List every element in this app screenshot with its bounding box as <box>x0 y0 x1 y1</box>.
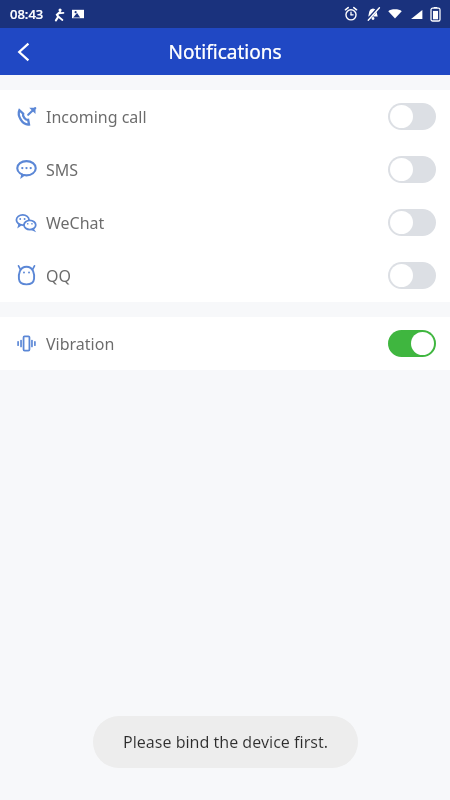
button[interactable]: Please bind the device first. <box>93 716 358 768</box>
staticText: Incoming call <box>46 106 147 128</box>
staticText: SMS <box>46 159 79 181</box>
staticText: WeChat <box>46 212 105 234</box>
staticText: Vibration <box>46 333 115 355</box>
button[interactable]: SMS <box>0 143 450 196</box>
staticText: Please bind the device first. <box>123 731 328 753</box>
staticText: QQ <box>46 265 71 287</box>
button[interactable]: QQ <box>0 249 450 302</box>
button[interactable]: Off <box>388 209 436 236</box>
button[interactable]: Off <box>388 103 436 130</box>
button[interactable]: WeChat <box>0 196 450 249</box>
staticText: 08:43 <box>10 5 44 23</box>
button[interactable]: Off <box>388 262 436 289</box>
button[interactable]: Incoming call <box>0 90 450 143</box>
button[interactable]: Vibration <box>0 317 450 370</box>
button[interactable]: Back <box>0 28 47 75</box>
button[interactable]: On <box>388 330 436 357</box>
button[interactable]: Off <box>388 156 436 183</box>
staticText: Notifications <box>168 39 282 65</box>
